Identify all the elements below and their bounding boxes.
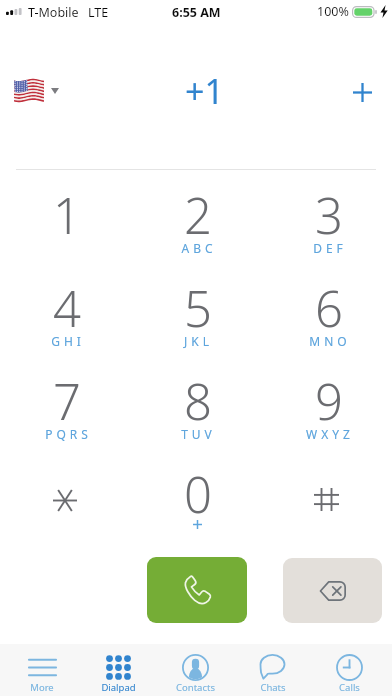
button[interactable]: Backspace bbox=[283, 558, 382, 623]
staticText: 5 bbox=[184, 275, 212, 342]
staticText: Dialpad bbox=[101, 681, 136, 694]
staticText: More bbox=[30, 681, 54, 694]
button[interactable]: Select country bbox=[9, 74, 65, 107]
staticText: 3 bbox=[315, 182, 343, 249]
button[interactable]: Add contact bbox=[340, 70, 384, 114]
staticText: 8 bbox=[184, 368, 212, 435]
button[interactable] bbox=[261, 449, 392, 542]
button[interactable]: Dialpad bbox=[80, 644, 157, 696]
staticText: 2 bbox=[184, 182, 212, 249]
staticText: TUV bbox=[181, 426, 216, 442]
staticText: PQRS bbox=[45, 426, 92, 442]
button[interactable]: Call bbox=[147, 557, 247, 623]
button[interactable]: 7 bbox=[0, 356, 130, 449]
staticText: 6 bbox=[315, 275, 343, 342]
staticText: Calls bbox=[339, 681, 360, 694]
staticText: 0 bbox=[184, 461, 212, 528]
button[interactable]: More bbox=[4, 644, 80, 696]
staticText: JKL bbox=[184, 333, 213, 349]
staticText: 9 bbox=[315, 368, 343, 435]
button[interactable]: 0 bbox=[130, 449, 261, 542]
button[interactable]: 1 bbox=[0, 170, 130, 263]
staticText: GHI bbox=[51, 333, 85, 349]
staticText: 4 bbox=[53, 275, 81, 342]
staticText: Contacts bbox=[176, 681, 215, 694]
staticText: 7 bbox=[53, 368, 81, 435]
button[interactable]: 9 bbox=[261, 356, 392, 449]
staticText: +1 bbox=[185, 68, 224, 114]
button[interactable] bbox=[0, 449, 130, 542]
staticText: LTE bbox=[88, 4, 109, 21]
staticText: Chats bbox=[260, 681, 286, 694]
button[interactable]: 4 bbox=[0, 263, 130, 356]
button[interactable]: 8 bbox=[130, 356, 261, 449]
staticText: DEF bbox=[313, 240, 347, 256]
staticText: MNO bbox=[309, 333, 351, 349]
staticText: WXYZ bbox=[306, 426, 354, 442]
button[interactable]: 6 bbox=[261, 263, 392, 356]
button[interactable]: 3 bbox=[261, 170, 392, 263]
staticText: ABC bbox=[181, 240, 217, 256]
button[interactable]: Calls bbox=[311, 644, 388, 696]
button[interactable]: Contacts bbox=[157, 644, 234, 696]
staticText: 1 bbox=[53, 182, 81, 249]
button[interactable]: 2 bbox=[130, 170, 261, 263]
button[interactable]: 5 bbox=[130, 263, 261, 356]
button[interactable]: Chats bbox=[234, 644, 311, 696]
staticText: 100% bbox=[317, 3, 349, 20]
staticText: 6:55 AM bbox=[172, 4, 221, 21]
staticText: T-Mobile bbox=[28, 4, 79, 21]
